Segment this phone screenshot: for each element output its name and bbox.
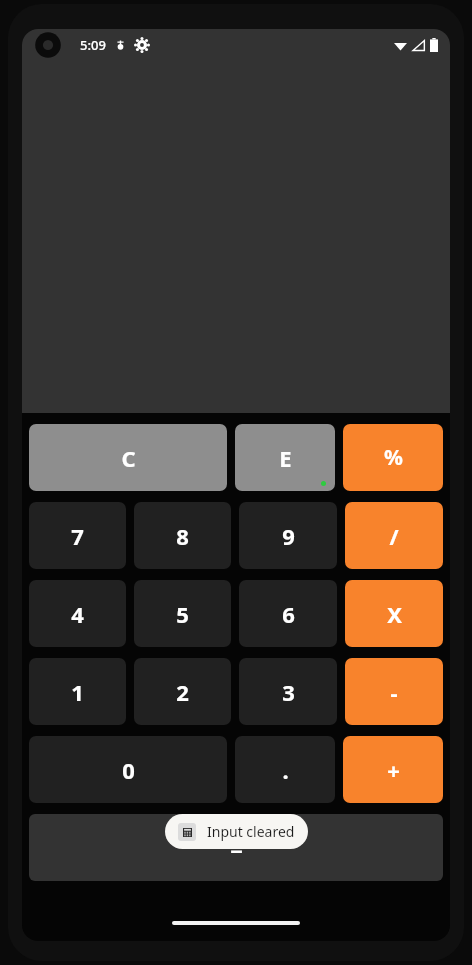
button[interactable]: E [235, 424, 335, 491]
staticText: Input cleared [207, 822, 295, 841]
button[interactable]: . [235, 736, 335, 803]
button[interactable]: + [343, 736, 443, 803]
staticText: 2 [176, 677, 189, 707]
staticText: 0 [122, 755, 135, 785]
button[interactable]: X [345, 580, 443, 647]
staticText: E [279, 443, 292, 473]
staticText: 4 [71, 599, 84, 629]
button[interactable]: 3 [239, 658, 337, 725]
button[interactable]: / [345, 502, 443, 569]
button[interactable]: 6 [239, 580, 337, 647]
button[interactable]: % [343, 424, 443, 491]
staticText: 5:09 [80, 36, 106, 54]
button[interactable]: 1 [29, 658, 126, 725]
staticText: . [282, 755, 289, 785]
staticText: = [230, 833, 243, 863]
button[interactable]: 5 [134, 580, 231, 647]
staticText: + [387, 755, 400, 785]
staticText: X [387, 599, 402, 629]
staticText: 1 [71, 677, 84, 707]
button[interactable]: - [345, 658, 443, 725]
button[interactable]: C [29, 424, 227, 491]
staticText: 3 [282, 677, 295, 707]
button[interactable]: 9 [239, 502, 337, 569]
staticText: 7 [71, 521, 84, 551]
staticText: 8 [176, 521, 189, 551]
staticText: % [384, 443, 403, 472]
staticText: 5 [176, 599, 189, 629]
staticText: C [121, 443, 136, 473]
button[interactable]: 8 [134, 502, 231, 569]
button[interactable]: 7 [29, 502, 126, 569]
button[interactable]: 2 [134, 658, 231, 725]
button[interactable]: 4 [29, 580, 126, 647]
button[interactable]: = [29, 814, 443, 881]
staticText: 9 [282, 521, 295, 551]
staticText: 6 [282, 599, 295, 629]
button[interactable]: 0 [29, 736, 227, 803]
staticText: / [389, 521, 399, 551]
staticText: - [390, 677, 398, 707]
